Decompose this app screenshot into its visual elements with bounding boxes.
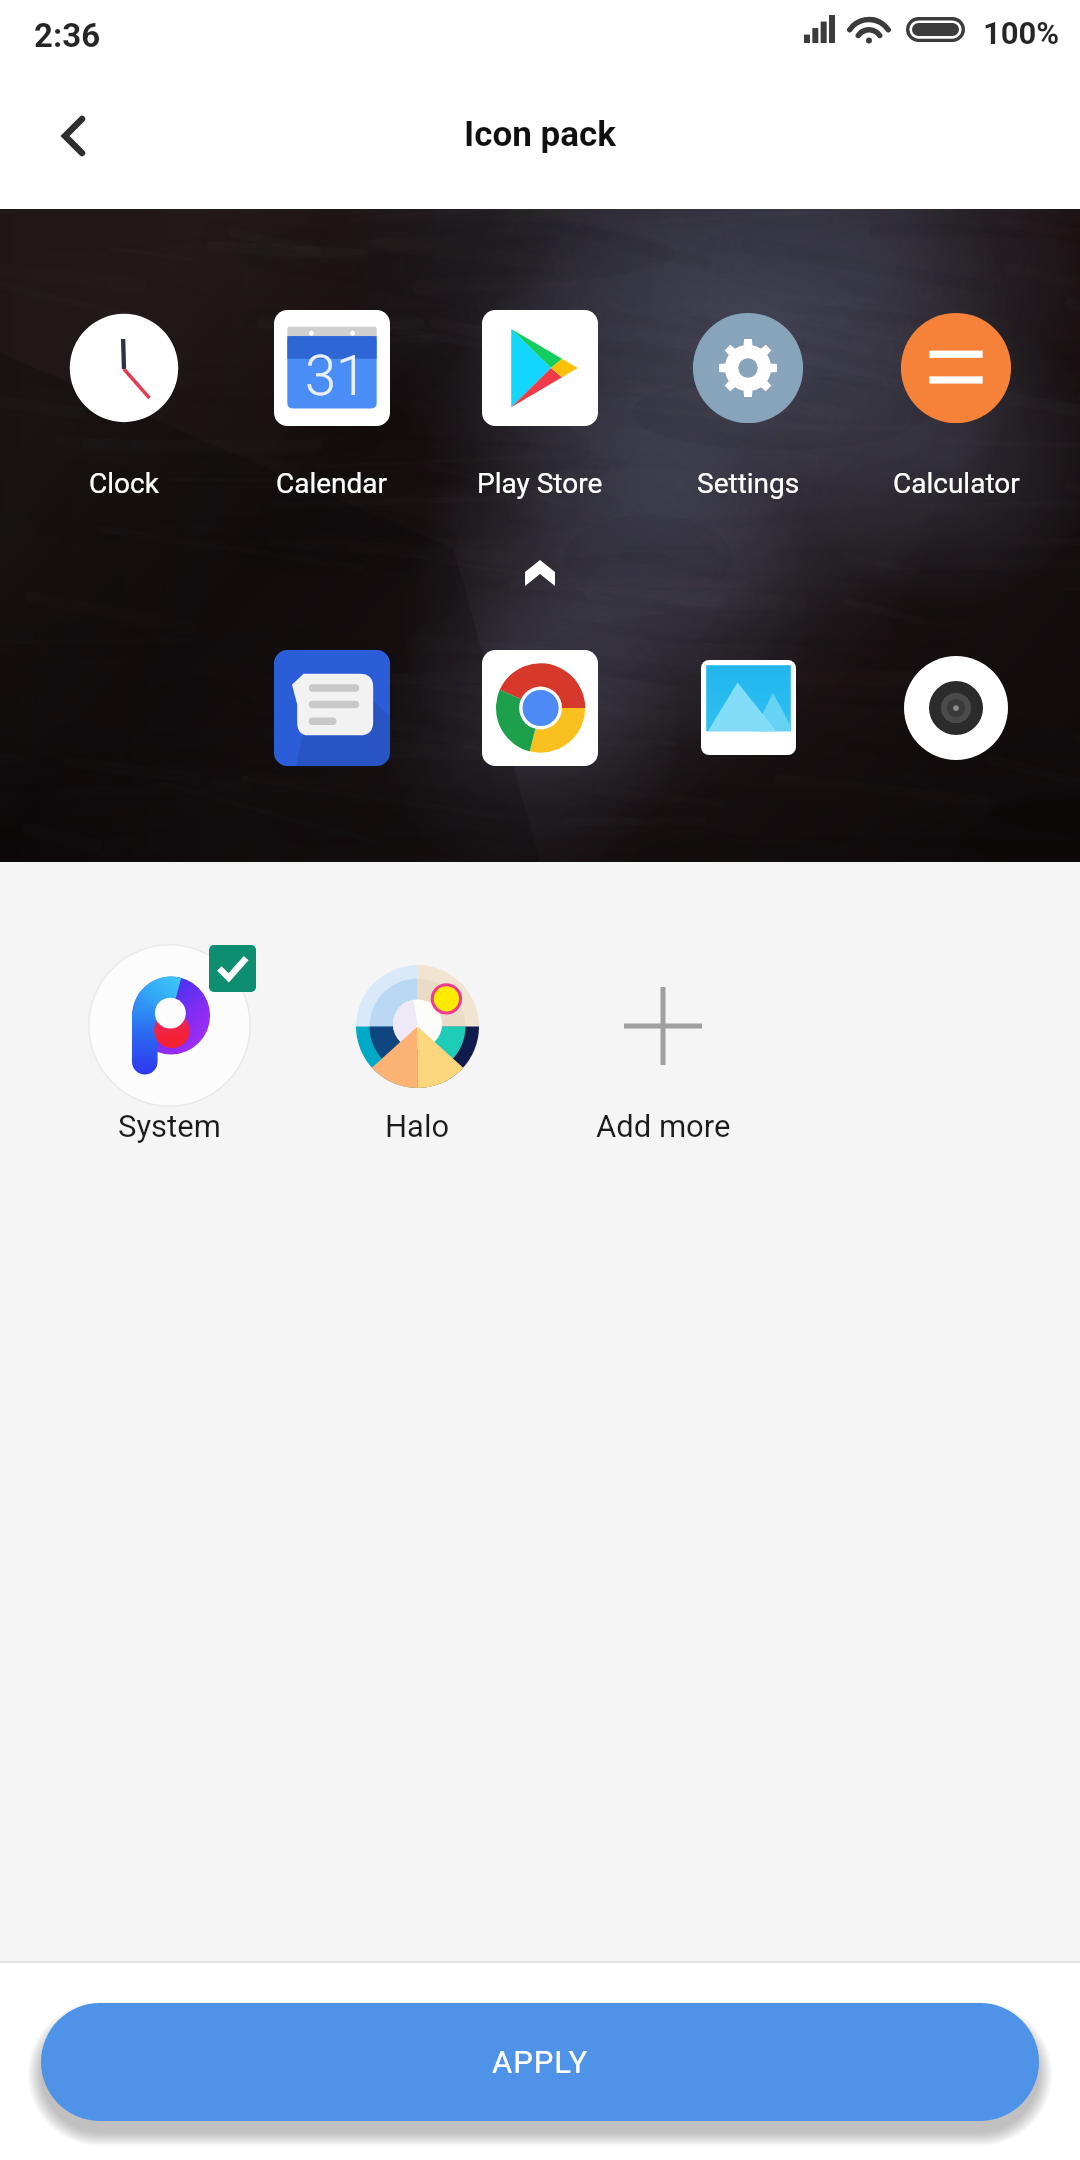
button[interactable]: Back: [23, 86, 123, 186]
button[interactable]: Clock: [20, 298, 228, 494]
button[interactable]: Open app drawer: [495, 543, 585, 603]
staticText: APPLY: [492, 2044, 589, 2080]
staticText: Calendar: [276, 467, 388, 500]
staticText: Clock: [89, 467, 159, 500]
staticText: Add more: [596, 1108, 731, 1144]
staticText: Settings: [697, 467, 800, 500]
staticText: 100%: [983, 15, 1060, 51]
button[interactable]: Calculator: [852, 298, 1060, 494]
button[interactable]: APPLY: [41, 2003, 1039, 2121]
button[interactable]: Play Store: [436, 298, 644, 494]
staticText: 31: [305, 343, 368, 409]
staticText: Icon pack: [464, 114, 616, 155]
button[interactable]: Settings: [644, 298, 852, 494]
button[interactable]: System: [59, 862, 279, 1162]
button[interactable]: Add more: [553, 862, 773, 1162]
staticText: Halo: [385, 1108, 450, 1144]
button[interactable]: Photos: [701, 660, 796, 755]
button[interactable]: Messages: [274, 650, 390, 766]
button[interactable]: Chrome: [482, 650, 598, 766]
button[interactable]: Calendar: [228, 298, 436, 494]
staticText: 2:36: [34, 16, 101, 55]
button[interactable]: Camera: [904, 656, 1008, 760]
button[interactable]: Halo: [307, 862, 527, 1162]
staticText: Play Store: [477, 467, 603, 500]
staticText: System: [118, 1108, 221, 1144]
staticText: Calculator: [893, 467, 1020, 500]
